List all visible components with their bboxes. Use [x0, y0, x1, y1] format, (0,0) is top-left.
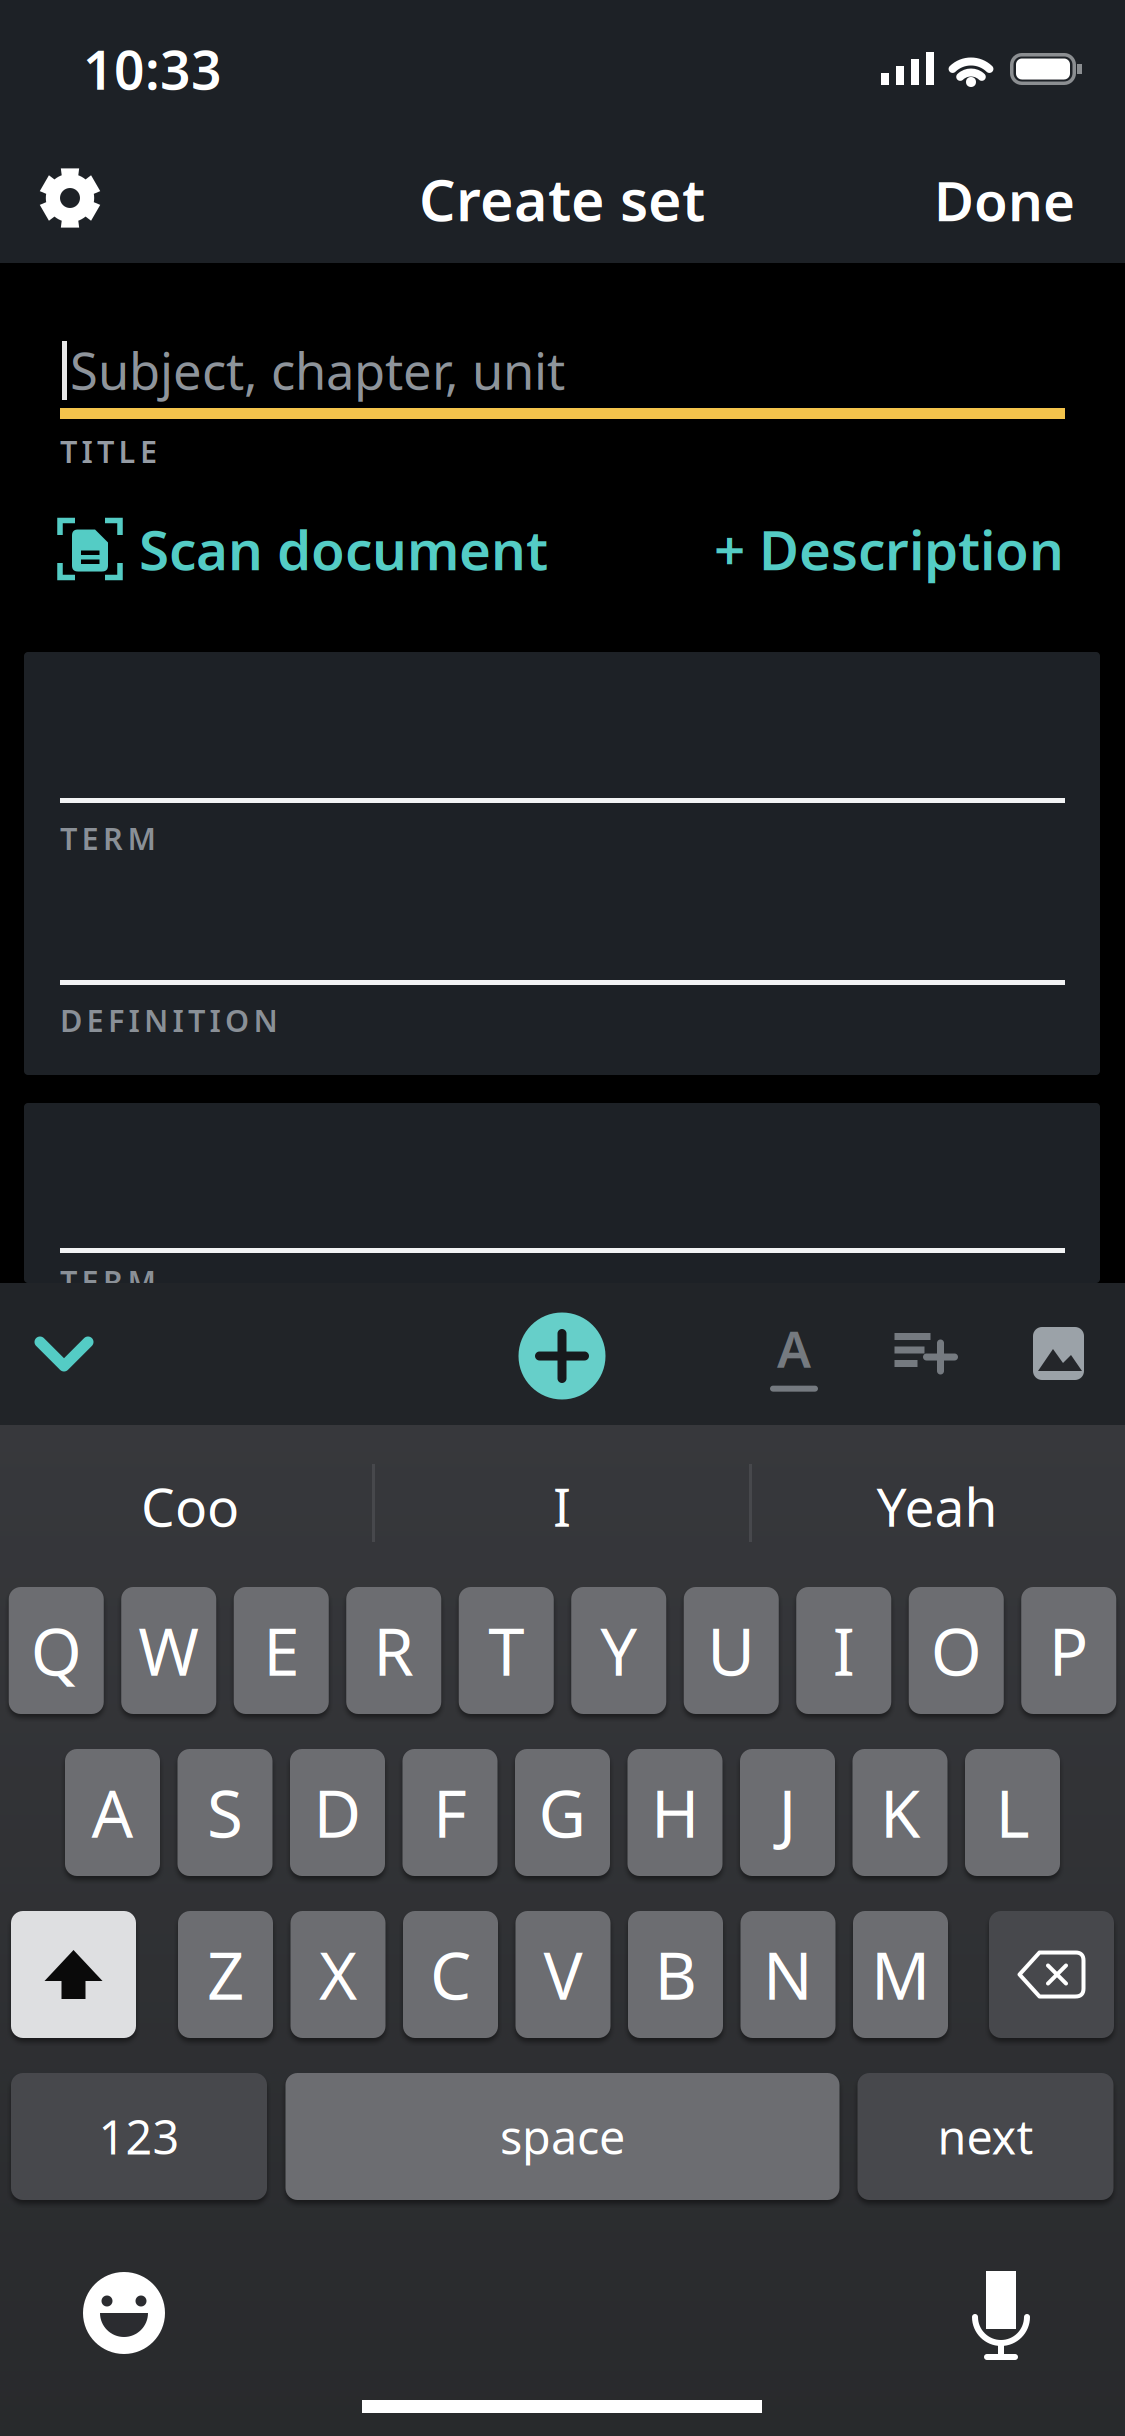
- staticText: TERM: [60, 1261, 155, 1301]
- staticText: space: [500, 2105, 625, 2167]
- staticText: Coo: [141, 1471, 239, 1541]
- button[interactable]: W: [121, 1587, 216, 1714]
- staticText: V: [543, 1931, 582, 2018]
- staticText: TITLE: [60, 431, 157, 471]
- button[interactable]: V: [515, 1911, 610, 2038]
- button[interactable]: P: [1021, 1587, 1116, 1714]
- staticText: M: [871, 1931, 930, 2018]
- staticText: TERM: [60, 818, 155, 858]
- staticText: U: [707, 1607, 755, 1694]
- button[interactable]: A: [65, 1749, 160, 1876]
- button[interactable]: Dismiss keyboard: [35, 1337, 93, 1371]
- staticText: O: [931, 1607, 982, 1694]
- staticText: I: [833, 1607, 855, 1694]
- button[interactable]: Q: [9, 1587, 104, 1714]
- button[interactable]: B: [628, 1911, 723, 2038]
- staticText: S: [207, 1769, 243, 1856]
- staticText: Yeah: [876, 1471, 997, 1541]
- button[interactable]: Yeah: [876, 1471, 997, 1541]
- staticText: 10:33: [83, 34, 222, 104]
- button[interactable]: C: [403, 1911, 498, 2038]
- button[interactable]: N: [740, 1911, 835, 2038]
- button[interactable]: S: [177, 1749, 272, 1876]
- button[interactable]: Add from list: [894, 1333, 955, 1375]
- staticText: DEFINITION: [60, 1000, 277, 1040]
- staticText: F: [433, 1769, 467, 1856]
- staticText: Z: [207, 1931, 244, 2018]
- button[interactable]: Coo: [141, 1471, 239, 1541]
- button[interactable]: Scan document: [57, 513, 617, 585]
- staticText: next: [937, 2105, 1033, 2167]
- staticText: A: [91, 1769, 133, 1856]
- staticText: A: [777, 1314, 811, 1382]
- staticText: P: [1049, 1607, 1089, 1694]
- staticText: Scan document: [139, 513, 548, 585]
- button[interactable]: Y: [571, 1587, 666, 1714]
- staticText: Done: [934, 164, 1075, 236]
- button[interactable]: Delete: [989, 1911, 1114, 2038]
- button[interactable]: X: [290, 1911, 385, 2038]
- button[interactable]: K: [852, 1749, 947, 1876]
- button[interactable]: Dictation: [974, 2271, 1028, 2359]
- button[interactable]: next: [857, 2073, 1113, 2200]
- staticText: C: [430, 1931, 471, 2018]
- button[interactable]: F: [402, 1749, 497, 1876]
- button[interactable]: Shift: [11, 1911, 136, 2038]
- button[interactable]: Settings: [37, 165, 103, 231]
- staticText: H: [651, 1769, 699, 1856]
- button[interactable]: L: [965, 1749, 1060, 1876]
- button[interactable]: M: [853, 1911, 948, 2038]
- staticText: + Description: [714, 513, 1064, 585]
- button[interactable]: space: [285, 2073, 839, 2200]
- button[interactable]: Emoji: [83, 2272, 165, 2354]
- staticText: Subject, chapter, unit: [70, 336, 565, 404]
- staticText: W: [138, 1607, 199, 1694]
- button[interactable]: U: [684, 1587, 779, 1714]
- staticText: R: [373, 1607, 414, 1694]
- button[interactable]: Add card: [518, 1312, 605, 1399]
- button[interactable]: J: [740, 1749, 835, 1876]
- staticText: N: [763, 1931, 813, 2018]
- staticText: Create set: [419, 161, 705, 237]
- button[interactable]: Add image: [1033, 1327, 1084, 1380]
- button[interactable]: E: [234, 1587, 329, 1714]
- staticText: I: [553, 1471, 571, 1541]
- staticText: E: [263, 1607, 299, 1694]
- staticText: X: [319, 1931, 357, 2018]
- staticText: G: [538, 1769, 586, 1856]
- staticText: B: [654, 1931, 696, 2018]
- staticText: D: [313, 1769, 361, 1856]
- button[interactable]: O: [909, 1587, 1004, 1714]
- button[interactable]: 123: [11, 2073, 267, 2200]
- staticText: Y: [600, 1607, 637, 1694]
- button[interactable]: I: [796, 1587, 891, 1714]
- button[interactable]: H: [627, 1749, 722, 1876]
- button[interactable]: I: [553, 1471, 571, 1541]
- button[interactable]: Text formatting: [770, 1314, 818, 1392]
- staticText: L: [995, 1769, 1029, 1856]
- button[interactable]: Z: [178, 1911, 273, 2038]
- staticText: 123: [98, 2105, 179, 2167]
- button[interactable]: + Description: [604, 513, 1064, 585]
- button[interactable]: T: [459, 1587, 554, 1714]
- button[interactable]: G: [515, 1749, 610, 1876]
- button[interactable]: Done: [755, 164, 1075, 236]
- button[interactable]: D: [290, 1749, 385, 1876]
- staticText: J: [778, 1769, 796, 1856]
- staticText: K: [880, 1769, 920, 1856]
- staticText: Q: [31, 1607, 82, 1694]
- button[interactable]: R: [346, 1587, 441, 1714]
- staticText: T: [488, 1607, 524, 1694]
